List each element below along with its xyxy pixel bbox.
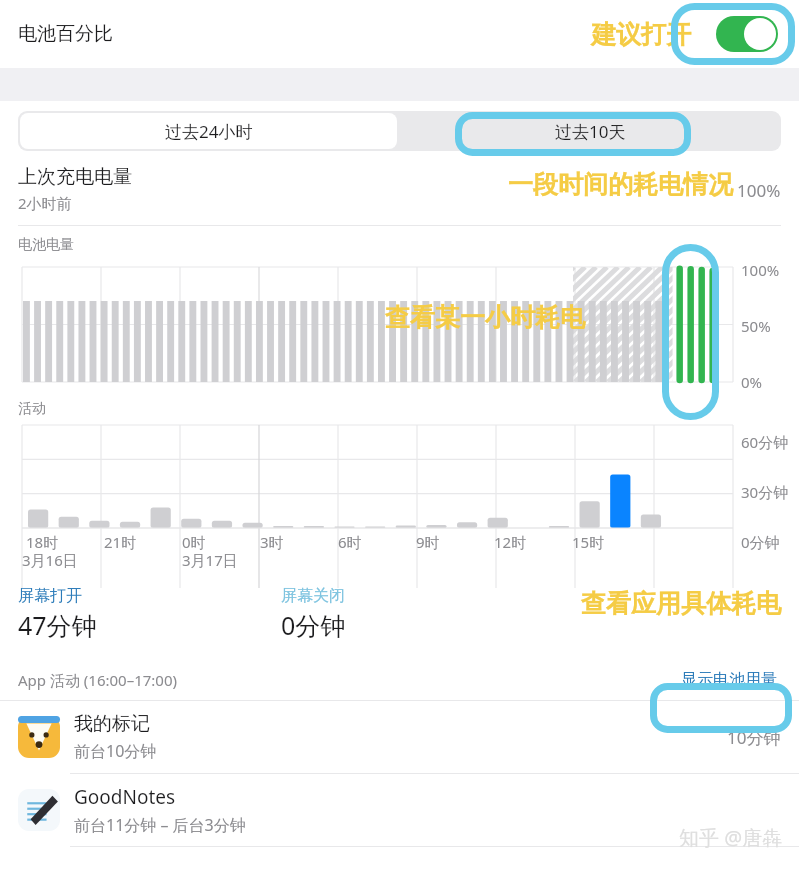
staticText: 过去10天 (555, 120, 626, 143)
staticText: 100% (737, 179, 781, 202)
staticText: 2小时前 (18, 193, 72, 213)
staticText: 屏幕关闭 (281, 586, 345, 606)
staticText: 上次充电电量 (18, 165, 132, 189)
button[interactable]: 电池百分比开关 (716, 16, 778, 52)
staticText: 电池电量 (18, 236, 74, 254)
staticText: 0分钟 (741, 532, 780, 550)
staticText: 15时 (572, 532, 605, 550)
staticText: 0% (741, 372, 763, 392)
button[interactable]: 显示电池用量 (677, 666, 781, 694)
staticText: 显示电池用量 (681, 670, 777, 690)
staticText: 21时 (104, 532, 137, 550)
staticText: 查看应用具体耗电 (581, 588, 781, 619)
button[interactable]: 过去24小时 (20, 113, 397, 149)
staticText: 屏幕打开 (18, 586, 82, 606)
staticText: 我的标记 (74, 712, 150, 736)
staticText: 9时 (416, 532, 440, 550)
staticText: 前台11分钟 – 后台3分钟 (74, 814, 246, 836)
button[interactable]: 过去10天 (399, 111, 781, 151)
staticText: 过去24小时 (165, 120, 253, 143)
staticText: 18时 (26, 532, 59, 550)
staticText: 3时 (260, 532, 284, 550)
button[interactable]: 电池百分比 (0, 0, 799, 68)
staticText: App 活动 (16:00–17:00) (18, 670, 178, 690)
staticText: 10分钟 (727, 726, 781, 749)
staticText: 电池百分比 (18, 22, 113, 46)
staticText: 前台10分钟 (74, 740, 157, 762)
staticText: 47分钟 (18, 608, 97, 642)
staticText: 30分钟 (741, 482, 789, 502)
staticText: 活动 (18, 400, 46, 418)
staticText: GoodNotes (74, 784, 176, 810)
staticText: 一段时间的耗电情况 (508, 169, 733, 200)
button[interactable]: 我的标记 (0, 701, 799, 773)
staticText: 3月16日 (22, 550, 78, 570)
staticText: 0分钟 (281, 608, 346, 642)
staticText: 3月17日 (182, 550, 238, 570)
staticText: 知乎 @唐犇 (679, 824, 783, 851)
staticText: 6时 (338, 532, 362, 550)
staticText: 60分钟 (741, 432, 789, 452)
staticText: 查看某一小时耗电 (385, 302, 585, 333)
staticText: 12时 (494, 532, 527, 550)
staticText: 建议打开 (591, 19, 691, 50)
staticText: 100% (741, 260, 780, 280)
staticText: 0时 (182, 532, 206, 550)
staticText: 50% (741, 316, 771, 336)
button[interactable]: GoodNotes (0, 774, 799, 846)
